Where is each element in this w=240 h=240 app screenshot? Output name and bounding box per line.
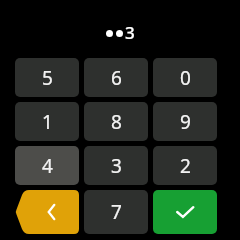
staticText: 3 bbox=[111, 153, 122, 179]
button[interactable]: 2 bbox=[153, 146, 217, 185]
button[interactable]: 3 bbox=[84, 146, 148, 185]
staticText: 5 bbox=[42, 65, 53, 91]
button[interactable]: 0 bbox=[153, 58, 217, 97]
staticText: 3 bbox=[125, 21, 135, 44]
staticText: 8 bbox=[111, 109, 122, 135]
button[interactable]: 5 bbox=[15, 58, 79, 97]
staticText: 2 bbox=[180, 153, 191, 179]
staticText: 7 bbox=[111, 199, 122, 225]
button[interactable]: Confirm bbox=[153, 190, 217, 234]
button[interactable]: 6 bbox=[84, 58, 148, 97]
button[interactable]: 9 bbox=[153, 102, 217, 141]
button[interactable]: 1 bbox=[15, 102, 79, 141]
button[interactable]: Delete bbox=[15, 190, 79, 234]
button[interactable]: 7 bbox=[84, 190, 148, 234]
staticText: 9 bbox=[180, 109, 191, 135]
staticText: 6 bbox=[111, 65, 122, 91]
staticText: 4 bbox=[42, 153, 53, 179]
button[interactable]: 8 bbox=[84, 102, 148, 141]
staticText: 0 bbox=[180, 65, 191, 91]
button[interactable]: 4 bbox=[15, 146, 79, 185]
staticText: 1 bbox=[42, 109, 53, 135]
